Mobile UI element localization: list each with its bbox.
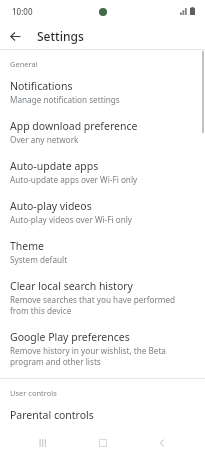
staticText: Remove searches that you have performed … [10,294,195,316]
staticText: Auto-play videos [10,199,92,213]
staticText: Auto-play videos over Wi-Fi only [10,214,133,225]
staticText: Auto-update apps [10,159,99,173]
staticText: Parental controls [10,408,94,419]
button[interactable]: Recent apps [26,431,60,455]
staticText: Notifications [10,79,73,93]
staticText: Auto-update apps over Wi-Fi only [10,174,138,185]
staticText: General [10,59,38,69]
staticText: System default [10,254,68,265]
button[interactable]: Clear local search history [0,272,205,323]
button[interactable]: Google Play preferences [0,323,205,374]
staticText: Settings [37,28,84,44]
button[interactable]: Auto-update apps [0,152,205,192]
button[interactable]: Back [4,25,26,47]
button[interactable]: Auto-play videos [0,192,205,232]
staticText: Manage notification settings [10,94,120,105]
button[interactable]: Notifications [0,72,205,112]
staticText: Over any network [10,134,79,145]
staticText: Clear local search history [10,279,133,293]
staticText: User controls [10,388,57,398]
staticText: App download preference [10,119,138,133]
staticText: Google Play preferences [10,330,130,344]
button[interactable]: Parental controls [0,401,205,426]
staticText: 10:00 [12,6,33,17]
button[interactable]: Back [145,431,179,455]
button[interactable]: App download preference [0,112,205,152]
button[interactable]: Theme [0,232,205,272]
staticText: Remove history in your wishlist, the Bet… [10,345,195,367]
button[interactable]: Home [86,431,120,455]
staticText: Theme [10,239,44,253]
